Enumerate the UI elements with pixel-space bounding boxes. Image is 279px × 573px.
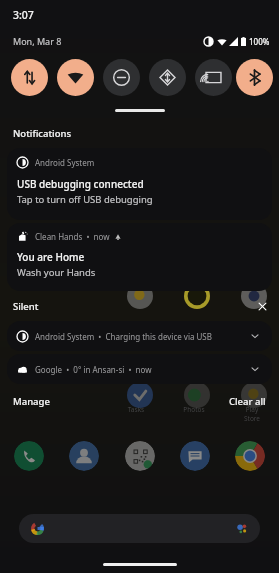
staticText: Android System • Charging this device vi… bbox=[35, 331, 212, 342]
button[interactable]: Chrome bbox=[235, 441, 265, 471]
button[interactable]: Expand bbox=[247, 328, 263, 344]
staticText: Notifications bbox=[13, 127, 72, 140]
button[interactable]: Search bbox=[19, 514, 260, 543]
staticText: Mon, Mar 8 bbox=[13, 35, 62, 47]
button[interactable]: Android System • Charging this device vi… bbox=[7, 321, 272, 351]
button[interactable]: Android System bbox=[7, 148, 272, 220]
staticText: Clear all bbox=[229, 395, 266, 408]
button[interactable]: Phone bbox=[14, 441, 44, 471]
button[interactable]: Contacts bbox=[69, 441, 99, 471]
staticText: Android System bbox=[35, 157, 95, 168]
button[interactable]: Clean Hands • now bbox=[7, 223, 272, 291]
staticText: Manage bbox=[13, 395, 50, 408]
button[interactable]: Wi-Fi bbox=[57, 59, 94, 96]
button[interactable]: Close bbox=[253, 297, 271, 315]
staticText: Photos bbox=[179, 405, 209, 414]
button[interactable]: Clear all bbox=[224, 391, 271, 412]
button[interactable]: Cast screen bbox=[195, 59, 232, 96]
button[interactable]: Google • 0° in Ansan-si • now bbox=[7, 354, 272, 384]
staticText: Tasks bbox=[121, 405, 151, 414]
staticText: Google • 0° in Ansan-si • now bbox=[35, 364, 152, 375]
button[interactable]: Manage bbox=[8, 391, 55, 412]
staticText: Tap to turn off USB debugging bbox=[17, 193, 153, 206]
staticText: Silent bbox=[13, 300, 39, 313]
button[interactable]: Internet bbox=[11, 59, 48, 96]
button[interactable]: Expand bbox=[247, 361, 263, 377]
staticText: Wash your Hands bbox=[17, 266, 96, 279]
button[interactable]: Do not disturb bbox=[103, 59, 140, 96]
staticText: 100% bbox=[249, 36, 270, 47]
button[interactable]: QR scanner bbox=[125, 441, 155, 471]
button[interactable]: Bluetooth bbox=[236, 59, 273, 96]
staticText: Clean Hands • now bbox=[35, 231, 110, 242]
staticText: 3:07 bbox=[13, 8, 34, 22]
button[interactable]: Auto-rotate bbox=[149, 59, 186, 96]
staticText: Play Store bbox=[237, 405, 267, 423]
button[interactable]: Messages bbox=[180, 441, 210, 471]
staticText: USB debugging connected bbox=[17, 177, 144, 191]
staticText: You are Home bbox=[17, 250, 85, 264]
